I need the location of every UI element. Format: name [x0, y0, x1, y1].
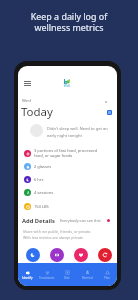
button[interactable]: 3 portions of fast food, processed food,… [20, 148, 116, 159]
button[interactable]: 154 LBS [20, 201, 116, 212]
button[interactable]: Edit entry [107, 110, 112, 115]
staticText: 4 sessions [34, 190, 54, 195]
staticText: Well [62, 84, 72, 88]
button[interactable]: Treatments [37, 263, 57, 286]
staticText: Didn't sleep well. Need to get an early … [47, 126, 108, 138]
staticText: Plan [104, 276, 110, 280]
button[interactable]: 2 glasses [20, 161, 116, 172]
button[interactable]: Heart [98, 248, 112, 262]
button[interactable]: Menu [19, 75, 35, 91]
staticText: Remind [82, 276, 93, 280]
staticText: 3 portions of fast food, processed food,… [34, 148, 98, 159]
staticText: Wed [22, 98, 31, 104]
button[interactable]: Activity [50, 248, 64, 262]
staticText: Keep a daily log of wellness metrics [0, 10, 138, 34]
staticText: Add Details [22, 217, 55, 225]
button[interactable]: Mood [74, 248, 88, 262]
staticText: 2 glasses [34, 164, 52, 169]
staticText: Share with me public, friends, or privat… [23, 229, 92, 234]
button[interactable]: Remind [77, 263, 97, 286]
button[interactable]: be Well logo [64, 79, 70, 84]
button[interactable]: Diet [57, 263, 77, 286]
staticText: Diet [64, 276, 70, 280]
button[interactable]: Close [102, 98, 110, 106]
staticText: Today [21, 104, 53, 120]
staticText: 154 LBS [34, 204, 49, 209]
staticText: Treatments [39, 276, 55, 280]
button[interactable]: 6 hrs [20, 174, 116, 185]
staticText: With less metrics are always private [23, 235, 83, 240]
staticText: 6 hrs [34, 177, 44, 182]
button[interactable]: Identify [18, 263, 37, 286]
button[interactable]: 4 sessions [20, 187, 116, 198]
staticText: Everybody can see this [60, 218, 101, 223]
staticText: Identify [22, 276, 33, 280]
button[interactable]: Plan [97, 263, 117, 286]
button[interactable]: Sleep [26, 248, 40, 262]
